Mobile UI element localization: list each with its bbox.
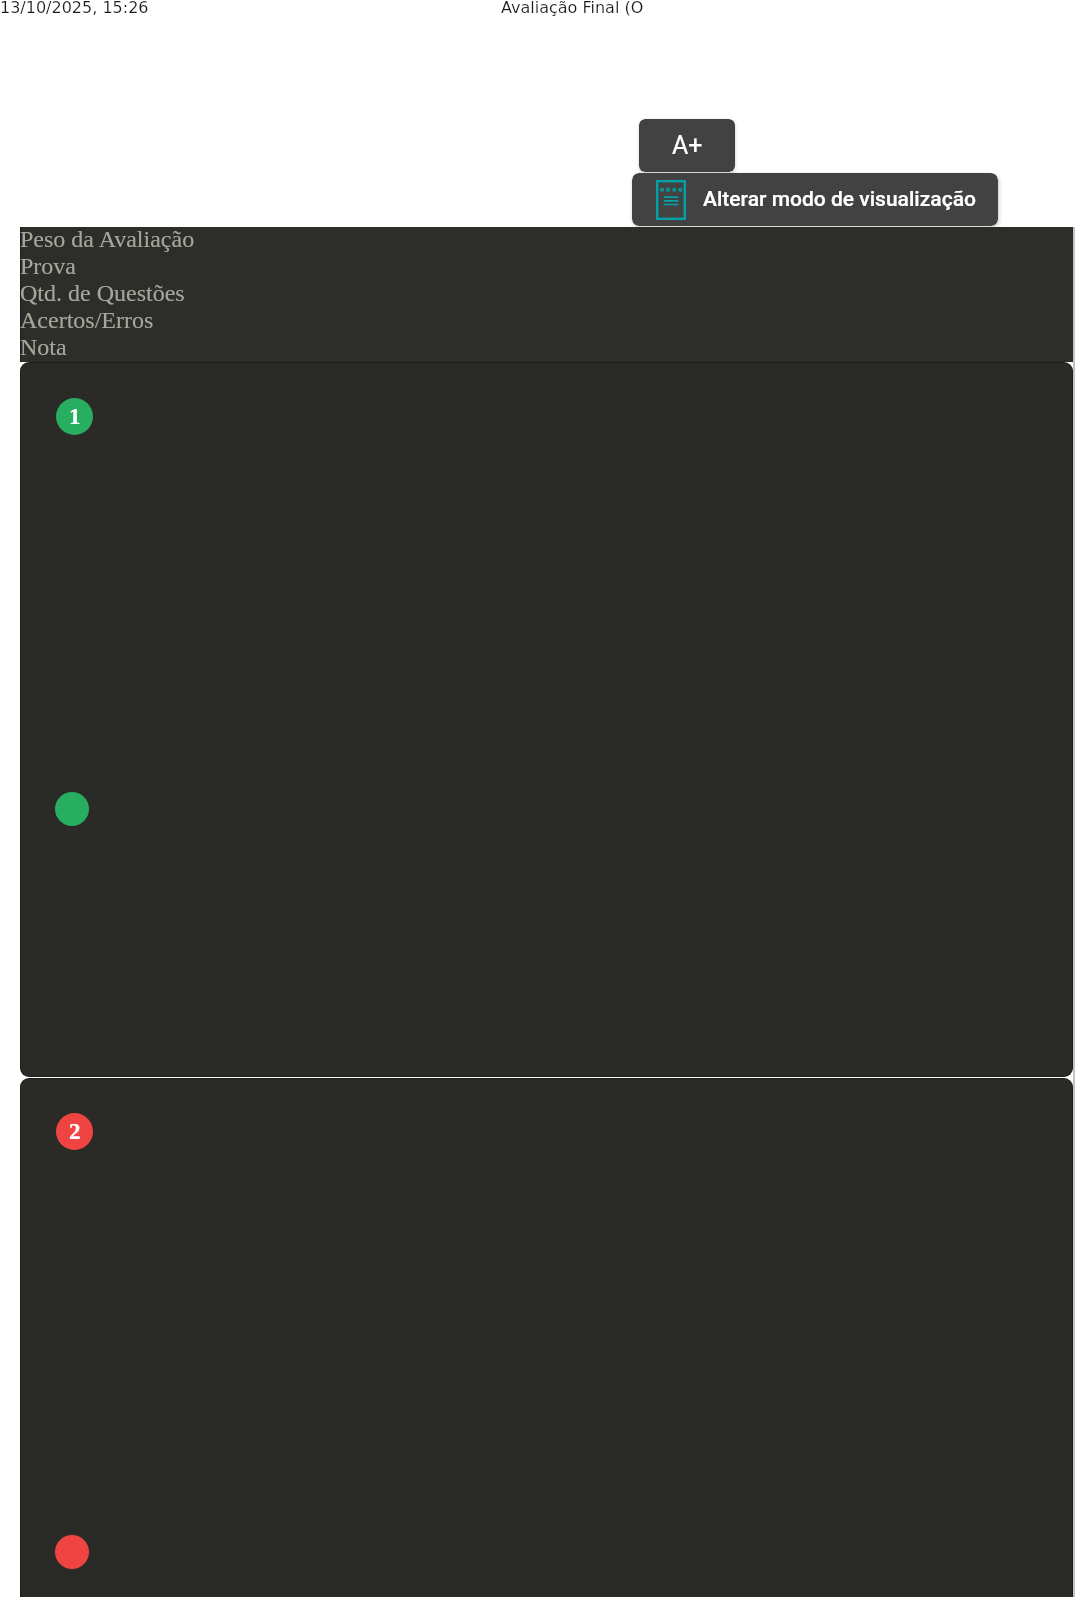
button[interactable]: Peso da Avaliação xyxy=(21,227,1073,362)
staticText: Peso da Avaliação xyxy=(20,226,195,253)
button[interactable]: 1 xyxy=(21,363,1072,1076)
button[interactable]: Aumentar tamanho do texto xyxy=(639,119,735,172)
staticText: Nota xyxy=(20,334,67,361)
staticText: Qtd. de Questões xyxy=(20,280,185,307)
staticText: A+ xyxy=(672,131,703,160)
staticText: Prova xyxy=(20,253,76,280)
staticText: 13/10/2025, 15:26 xyxy=(0,0,149,17)
staticText: Alterar modo de visualização xyxy=(703,187,976,212)
staticText: 2 xyxy=(69,1119,81,1144)
staticText: 1 xyxy=(69,404,81,429)
button[interactable]: Alterar modo de visualização xyxy=(632,173,998,226)
staticText: Acertos/Erros xyxy=(20,307,154,334)
button[interactable]: 2 xyxy=(21,1079,1072,1597)
staticText: Avaliação Final (O xyxy=(501,0,644,17)
other: Alterar modo de visualização xyxy=(656,180,686,220)
